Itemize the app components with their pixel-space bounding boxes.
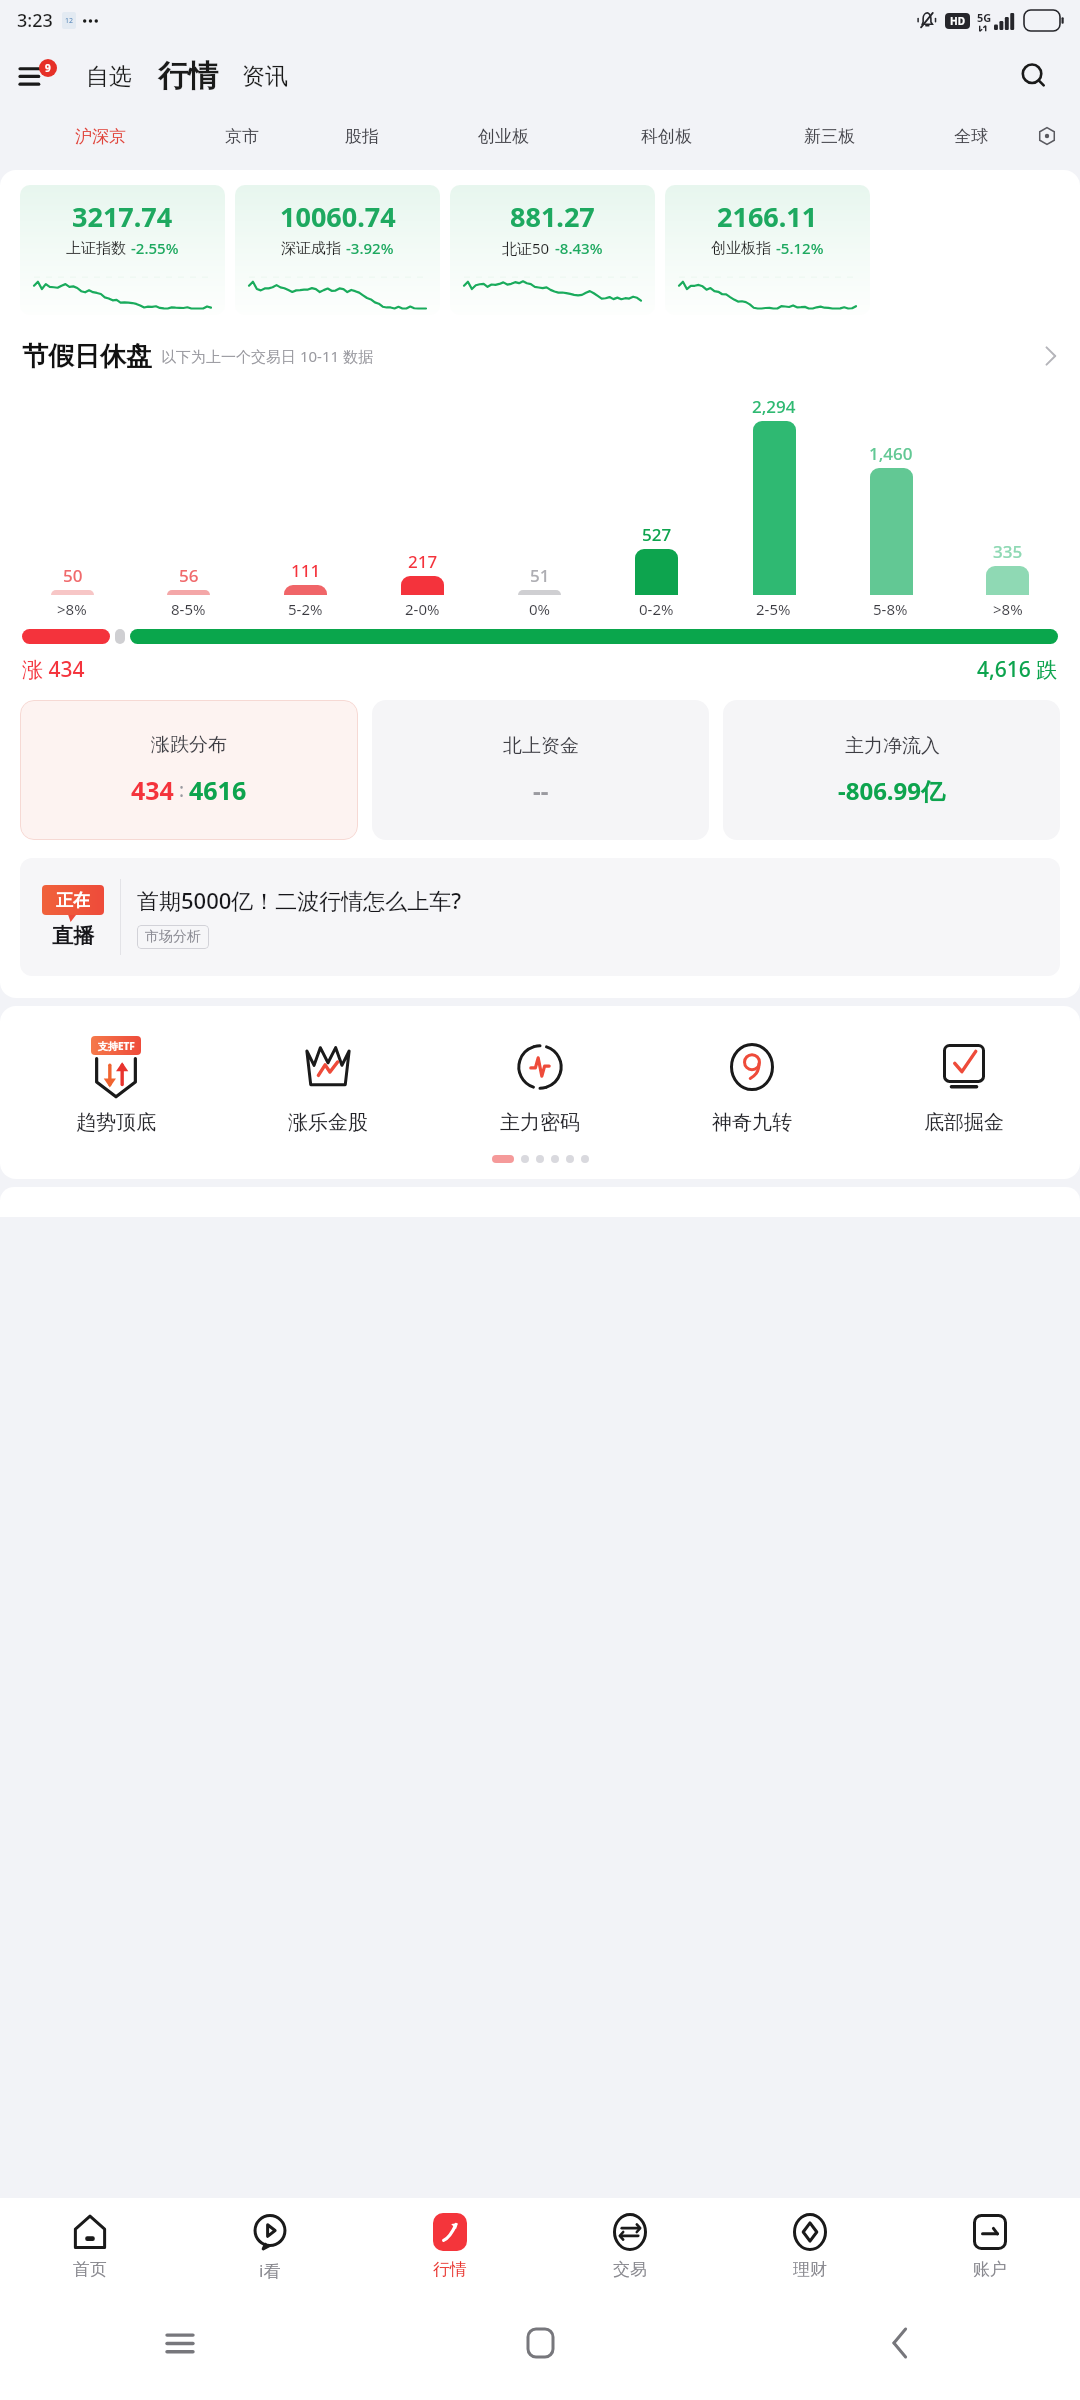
button[interactable]: 行情 <box>360 2198 540 2316</box>
staticText: : <box>174 777 189 803</box>
staticText: 881.27 <box>510 198 595 235</box>
staticText: 50 <box>63 564 83 587</box>
button[interactable]: 底部掘金 <box>858 1032 1070 1139</box>
button[interactable]: 资讯 <box>240 56 290 97</box>
staticText: 111 <box>291 559 321 582</box>
staticText: 深证成指 <box>281 239 341 258</box>
button[interactable]: 交易 <box>540 2198 720 2316</box>
staticText: -3.92% <box>346 238 394 258</box>
staticText: 创业板 <box>478 126 529 147</box>
staticText: 底部掘金 <box>924 1110 1004 1135</box>
staticText: 支持ETF <box>98 1039 135 1053</box>
staticText: -806.99亿 <box>838 774 946 807</box>
staticText: 神奇九转 <box>712 1110 792 1135</box>
staticText: 1,460 <box>869 442 913 465</box>
staticText: -5.12% <box>776 238 824 258</box>
staticText: 科创板 <box>641 126 692 147</box>
staticText: 股指 <box>345 126 379 147</box>
staticText: 涨 434 <box>22 655 85 684</box>
staticText: 3217.74 <box>72 198 173 235</box>
staticText: 首期5000亿！二波行情怎么上车? <box>137 885 462 915</box>
button[interactable]: i看 <box>180 2198 360 2316</box>
button[interactable]: 账户 <box>900 2198 1080 2316</box>
button[interactable]: 涨乐金股 <box>222 1032 434 1139</box>
button[interactable]: 2166.11 <box>665 185 870 315</box>
staticText: 2-5% <box>756 599 791 619</box>
staticText: 4,616 跌 <box>977 655 1058 684</box>
staticText: -- <box>533 774 549 807</box>
staticText: 新三板 <box>804 126 855 147</box>
staticText: 京市 <box>225 126 259 147</box>
staticText: 5-8% <box>873 599 908 619</box>
staticText: 沪深京 <box>75 126 126 147</box>
staticText: 335 <box>993 540 1023 563</box>
staticText: 51 <box>530 564 550 587</box>
staticText: 12 <box>65 16 74 26</box>
staticText: 行情 <box>158 57 218 95</box>
staticText: 北证50 <box>502 238 550 258</box>
staticText: i看 <box>259 2259 281 2282</box>
staticText: 行情 <box>433 2259 467 2280</box>
button[interactable]: 自选 <box>84 56 134 97</box>
staticText: 56 <box>179 564 199 587</box>
staticText: 直播 <box>52 923 94 949</box>
staticText: 全球 <box>954 126 988 147</box>
button[interactable]: 节假日休盘 <box>0 329 1080 383</box>
button[interactable]: 科创板 <box>585 111 748 161</box>
button[interactable]: 首页 <box>0 2198 180 2316</box>
button[interactable]: 创业板 <box>422 111 585 161</box>
button[interactable]: 支持ETF <box>10 1032 222 1139</box>
staticText: 涨跌分布 <box>151 733 227 757</box>
button[interactable]: 股指 <box>302 111 422 161</box>
button[interactable]: 新三板 <box>748 111 911 161</box>
button[interactable]: Back <box>720 2316 1080 2400</box>
button[interactable]: 主力净流入 <box>723 700 1060 840</box>
staticText: 主力净流入 <box>845 734 940 758</box>
button[interactable]: Home <box>360 2316 720 2400</box>
staticText: 主力密码 <box>500 1110 580 1135</box>
staticText: 理财 <box>793 2259 827 2280</box>
staticText: 北上资金 <box>503 734 579 758</box>
staticText: 527 <box>642 523 672 546</box>
staticText: >8% <box>993 599 1023 619</box>
staticText: 4616 <box>189 773 247 807</box>
button[interactable]: 行情 <box>156 53 220 99</box>
staticText: -2.55% <box>131 238 179 258</box>
staticText: 首页 <box>73 2259 107 2280</box>
button[interactable]: 涨跌分布 <box>20 700 358 840</box>
button[interactable]: Menu <box>20 56 62 96</box>
staticText: 0-2% <box>639 599 674 619</box>
staticText: 交易 <box>613 2259 647 2280</box>
button[interactable]: 北上资金 <box>372 700 709 840</box>
staticText: 趋势顶底 <box>76 1110 156 1135</box>
button[interactable]: 881.27 <box>450 185 655 315</box>
button[interactable]: 正在 <box>20 858 1060 976</box>
staticText: 9 <box>45 61 51 75</box>
staticText: 节假日休盘 <box>22 340 152 373</box>
staticText: 2,294 <box>752 395 796 418</box>
staticText: 涨乐金股 <box>288 1110 368 1135</box>
button[interactable]: 主力密码 <box>434 1032 646 1139</box>
staticText: 创业板指 <box>711 239 771 258</box>
button[interactable]: 神奇九转 <box>646 1032 858 1139</box>
staticText: 10060.74 <box>280 198 396 235</box>
staticText: 市场分析 <box>145 928 201 946</box>
button[interactable]: 10060.74 <box>235 185 440 315</box>
staticText: 2166.11 <box>717 198 818 235</box>
staticText: 434 <box>131 773 174 807</box>
button[interactable]: 沪深京 <box>18 111 182 161</box>
staticText: 上证指数 <box>66 239 126 258</box>
staticText: 5G <box>977 10 992 25</box>
staticText: 正在 <box>56 890 90 911</box>
button[interactable]: 京市 <box>182 111 302 161</box>
staticText: 5-2% <box>288 599 323 619</box>
button[interactable]: Recents <box>0 2316 360 2400</box>
button[interactable]: 3217.74 <box>20 185 225 315</box>
button[interactable]: 全球 <box>911 111 1030 161</box>
button[interactable]: More categories <box>1030 119 1064 153</box>
staticText: 以下为上一个交易日 10-11 数据 <box>161 346 373 366</box>
button[interactable]: 理财 <box>720 2198 900 2316</box>
staticText: 2-0% <box>405 599 440 619</box>
staticText: >8% <box>57 599 87 619</box>
button[interactable]: Search <box>1012 54 1056 98</box>
